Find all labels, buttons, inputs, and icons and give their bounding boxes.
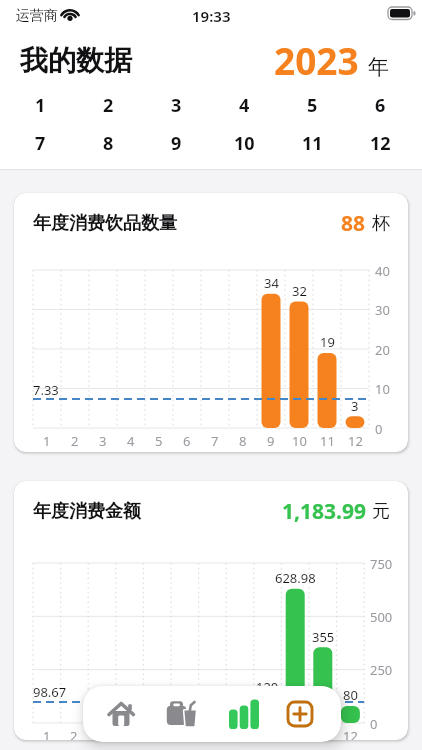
staticText: 500 <box>370 608 393 626</box>
staticText: 杯 <box>372 212 390 235</box>
staticText: 1 <box>35 93 46 117</box>
staticText: 355 <box>312 628 335 646</box>
staticText: 98.67 <box>33 683 67 701</box>
staticText: 6 <box>183 432 191 450</box>
staticText: 11 <box>320 432 335 450</box>
staticText: 9 <box>267 432 275 450</box>
staticText: 2 <box>103 93 114 117</box>
button[interactable] <box>99 692 143 736</box>
staticText: 9 <box>171 131 182 155</box>
button[interactable]: 10 <box>224 131 264 155</box>
staticText: 8 <box>239 432 247 450</box>
staticText: 88 <box>341 209 366 238</box>
button[interactable]: 3 <box>156 93 196 117</box>
staticText: 20 <box>375 341 390 359</box>
staticText: 年度消费金额 <box>33 500 141 523</box>
staticText: 1 <box>43 727 51 740</box>
button[interactable]: 5 <box>292 93 332 117</box>
staticText: 2023 <box>274 35 359 85</box>
staticText: 2 <box>70 727 78 740</box>
staticText: 运营商 <box>16 7 58 25</box>
staticText: 1,183.99 <box>282 497 366 526</box>
staticText: 80 <box>343 686 358 704</box>
staticText: 10 <box>234 131 255 155</box>
staticText: 10 <box>375 380 390 398</box>
staticText: 7 <box>211 432 219 450</box>
staticText: 4 <box>127 432 135 450</box>
staticText: 12 <box>348 432 363 450</box>
staticText: 32 <box>292 282 307 300</box>
staticText: 250 <box>370 661 393 679</box>
button[interactable] <box>278 692 322 736</box>
staticText: 628.98 <box>275 569 316 587</box>
staticText: 5 <box>155 432 163 450</box>
staticText: 3 <box>99 432 107 450</box>
staticText: 10 <box>288 727 303 740</box>
button[interactable]: 4 <box>224 93 264 117</box>
staticText: 750 <box>370 555 393 573</box>
staticText: 0 <box>370 715 378 733</box>
staticText: 0 <box>375 420 383 438</box>
button[interactable]: 7 <box>20 131 60 155</box>
button[interactable]: 1 <box>20 93 60 117</box>
staticText: 11 <box>302 131 323 155</box>
staticText: 年 <box>368 54 389 80</box>
staticText: 8 <box>103 131 114 155</box>
button[interactable]: 2 <box>88 93 128 117</box>
staticText: 元 <box>372 500 390 523</box>
staticText: 19:33 <box>192 6 231 26</box>
staticText: 12 <box>343 727 358 740</box>
staticText: 1 <box>43 432 51 450</box>
staticText: 30 <box>375 301 390 319</box>
button[interactable]: 6 <box>360 93 400 117</box>
staticText: 12 <box>370 131 391 155</box>
staticText: 7.33 <box>33 381 59 399</box>
staticText: 120 <box>256 678 279 696</box>
staticText: 3 <box>351 397 359 415</box>
staticText: 我的数据 <box>20 43 132 78</box>
button[interactable]: 9 <box>156 131 196 155</box>
button[interactable]: 12 <box>360 131 400 155</box>
button[interactable] <box>158 692 202 736</box>
staticText: 5 <box>307 93 318 117</box>
staticText: 10 <box>292 432 307 450</box>
staticText: 4 <box>239 93 250 117</box>
staticText: 40 <box>375 262 390 280</box>
button[interactable]: 8 <box>88 131 128 155</box>
staticText: 3 <box>171 93 182 117</box>
staticText: 2 <box>71 432 79 450</box>
staticText: 34 <box>264 274 279 292</box>
staticText: 年度消费饮品数量 <box>33 212 177 235</box>
button[interactable]: 11 <box>292 131 332 155</box>
staticText: 6 <box>375 93 386 117</box>
staticText: 8 <box>236 727 244 740</box>
staticText: 7 <box>35 131 46 155</box>
button[interactable] <box>222 692 266 736</box>
staticText: 19 <box>320 333 335 351</box>
